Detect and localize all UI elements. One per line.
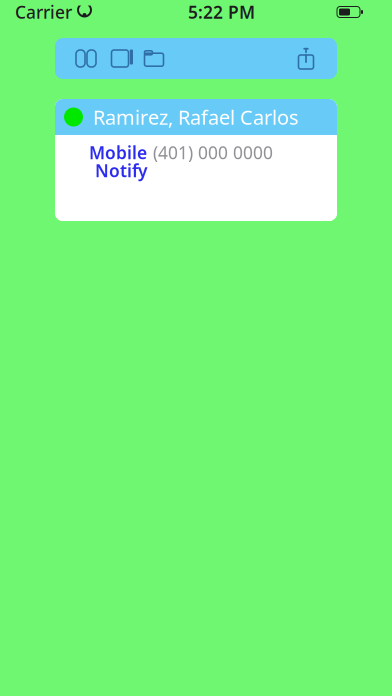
button[interactable]: Ramirez, Rafael Carlos: [55, 99, 337, 135]
button[interactable]: Share: [289, 38, 323, 79]
button[interactable]: Compose: [103, 38, 137, 79]
staticText: Ramirez, Rafael Carlos: [93, 104, 299, 130]
staticText: 5:22 PM: [188, 0, 255, 23]
staticText: Carrier: [15, 0, 72, 23]
staticText: Notify: [95, 159, 147, 182]
button[interactable]: Groups: [137, 38, 171, 79]
button[interactable]: Mobile: [55, 143, 337, 162]
staticText: Mobile: [89, 141, 147, 164]
button[interactable]: Notify: [55, 162, 337, 179]
staticText: (401) 000 0000: [153, 141, 273, 164]
button[interactable]: Contacts: [69, 38, 103, 79]
